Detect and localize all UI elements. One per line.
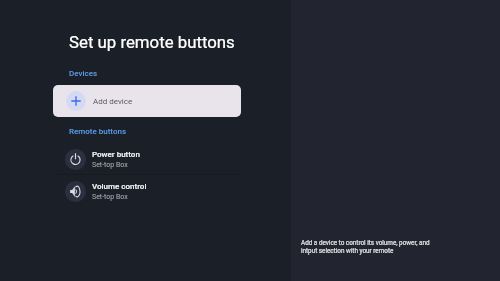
- button[interactable]: Volume control, Set-top Box: [52, 175, 240, 207]
- staticText: Set up remote buttons: [69, 32, 235, 52]
- staticText: Remote buttons: [69, 126, 127, 136]
- staticText: Set-top Box: [92, 192, 128, 201]
- staticText: Power button: [92, 149, 140, 159]
- staticText: Set-top Box: [92, 160, 128, 169]
- staticText: Add a device to control its volume, powe…: [301, 239, 430, 255]
- staticText: Volume control: [92, 181, 147, 191]
- button[interactable]: Power button, Set-top Box: [52, 143, 240, 175]
- other: Volume control, Set-top Box: [65, 181, 86, 202]
- other: Power button, Set-top Box: [65, 149, 86, 170]
- button[interactable]: Add device: [53, 85, 241, 117]
- staticText: Add device: [93, 96, 133, 106]
- staticText: Devices: [69, 68, 98, 78]
